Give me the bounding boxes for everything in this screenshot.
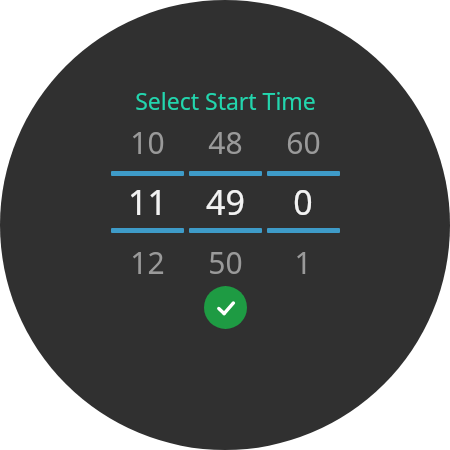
button[interactable]: Seconds	[264, 119, 342, 285]
staticText: 0	[293, 179, 313, 225]
staticText: 60	[286, 122, 321, 163]
button[interactable]: Confirm time selection	[204, 286, 247, 329]
staticText: 10	[130, 122, 165, 163]
staticText: Select Start Time	[135, 85, 316, 116]
staticText: 12	[130, 242, 165, 283]
button[interactable]: Minutes	[186, 119, 264, 285]
button[interactable]: Hours	[108, 119, 186, 285]
staticText: 1	[294, 242, 312, 283]
staticText: 50	[208, 242, 243, 283]
staticText: 11	[128, 179, 167, 225]
staticText: 48	[208, 122, 243, 163]
staticText: 49	[206, 179, 245, 225]
